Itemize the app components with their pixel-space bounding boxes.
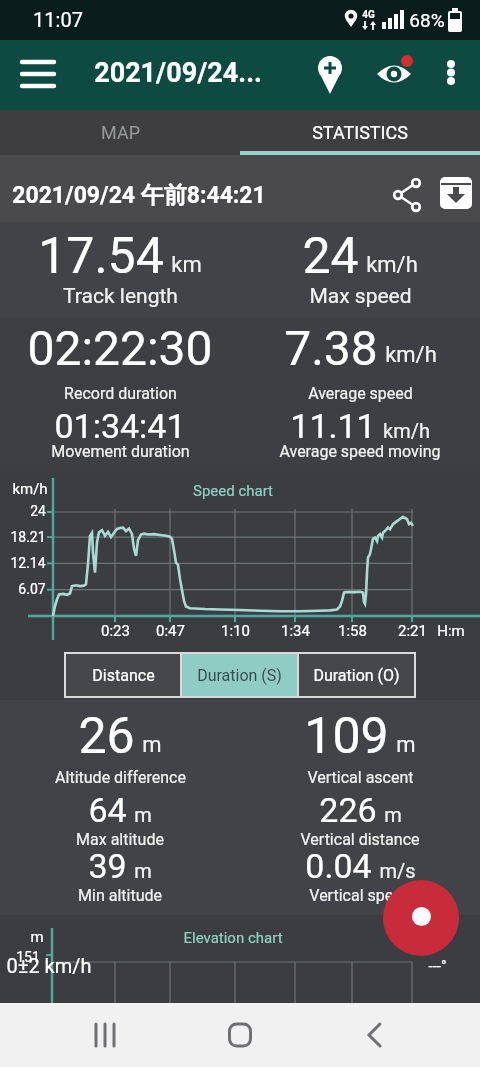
staticText: ---° bbox=[428, 957, 447, 975]
staticText: m bbox=[30, 928, 44, 946]
button[interactable] bbox=[10, 52, 62, 98]
staticText: 24 bbox=[30, 503, 46, 519]
staticText: 02:22:30 bbox=[27, 320, 213, 376]
staticText: Elevation chart bbox=[0, 929, 473, 947]
button[interactable] bbox=[430, 48, 472, 102]
button[interactable] bbox=[438, 173, 478, 213]
button[interactable]: Duration (S) bbox=[182, 654, 297, 696]
staticText: 26 bbox=[78, 707, 135, 766]
button[interactable]: STATISTICS bbox=[240, 110, 480, 155]
staticText: 109 bbox=[304, 707, 389, 766]
staticText: Max altitude bbox=[76, 830, 164, 849]
button[interactable]: MAP bbox=[0, 110, 240, 155]
button[interactable] bbox=[370, 48, 418, 102]
staticText: km/h bbox=[12, 480, 48, 498]
staticText: Vertical speed bbox=[309, 886, 411, 905]
staticText: Vertical ascent bbox=[307, 768, 414, 787]
staticText: Record duration bbox=[64, 384, 177, 403]
staticText: m bbox=[134, 803, 152, 826]
staticText: km/h bbox=[385, 342, 437, 368]
staticText: 64 bbox=[88, 790, 127, 830]
button[interactable] bbox=[75, 1005, 135, 1065]
staticText: m bbox=[134, 859, 152, 882]
staticText: 2:21 bbox=[398, 622, 427, 640]
staticText: km/h bbox=[383, 419, 430, 442]
staticText: Vertical distance bbox=[300, 830, 420, 849]
staticText: km bbox=[171, 252, 202, 278]
staticText: Max speed bbox=[309, 284, 412, 309]
staticText: Average speed moving bbox=[279, 442, 441, 461]
staticText: MAP bbox=[101, 122, 140, 143]
button[interactable]: Duration (O) bbox=[299, 654, 414, 696]
staticText: 2021/09/24 午前8:44:21 bbox=[12, 181, 266, 210]
staticText: Track length bbox=[63, 284, 178, 309]
staticText: 1:58 bbox=[338, 622, 367, 640]
staticText: 11:07 bbox=[33, 8, 83, 31]
staticText: 2021/09/24... bbox=[94, 57, 262, 89]
staticText: m bbox=[396, 732, 416, 758]
staticText: H:m bbox=[437, 622, 465, 640]
staticText: km/h bbox=[366, 252, 418, 278]
button[interactable]: Distance bbox=[66, 654, 180, 696]
button[interactable] bbox=[306, 48, 354, 102]
staticText: Min altitude bbox=[78, 886, 162, 905]
staticText: 01:34:41 bbox=[54, 406, 186, 446]
staticText: 7.38 bbox=[284, 320, 378, 376]
staticText: Altitude difference bbox=[55, 768, 186, 787]
staticText: 1:34 bbox=[281, 622, 310, 640]
staticText: 12.14 bbox=[10, 555, 46, 571]
staticText: 1:10 bbox=[221, 622, 250, 640]
staticText: Duration (O) bbox=[313, 666, 400, 685]
staticText: 39 bbox=[88, 846, 127, 886]
staticText: 0:23 bbox=[101, 622, 130, 640]
staticText: 0:47 bbox=[156, 622, 185, 640]
staticText: STATISTICS bbox=[312, 122, 408, 143]
staticText: 11.11 bbox=[290, 406, 376, 446]
staticText: m bbox=[384, 803, 402, 826]
staticText: 68% bbox=[409, 9, 445, 31]
button[interactable] bbox=[344, 1005, 404, 1065]
staticText: Average speed bbox=[308, 384, 413, 403]
staticText: 17.54 bbox=[38, 227, 164, 286]
staticText: Distance bbox=[92, 666, 155, 685]
staticText: m/s bbox=[379, 859, 416, 882]
staticText: 18.21 bbox=[10, 529, 46, 545]
staticText: 0±2 km/h bbox=[6, 954, 92, 977]
staticText: 6.07 bbox=[18, 581, 46, 597]
staticText: 0.04 bbox=[305, 846, 372, 886]
staticText: Duration (S) bbox=[197, 666, 282, 685]
staticText: m bbox=[142, 732, 162, 758]
button[interactable] bbox=[386, 173, 430, 217]
staticText: 24 bbox=[302, 227, 359, 286]
button[interactable] bbox=[210, 1005, 270, 1065]
button[interactable] bbox=[383, 880, 459, 956]
staticText: 151 bbox=[16, 949, 40, 965]
staticText: 4G bbox=[362, 9, 375, 21]
staticText: Speed chart bbox=[0, 482, 473, 500]
staticText: 226 bbox=[319, 790, 377, 830]
staticText: Movement duration bbox=[51, 442, 190, 461]
